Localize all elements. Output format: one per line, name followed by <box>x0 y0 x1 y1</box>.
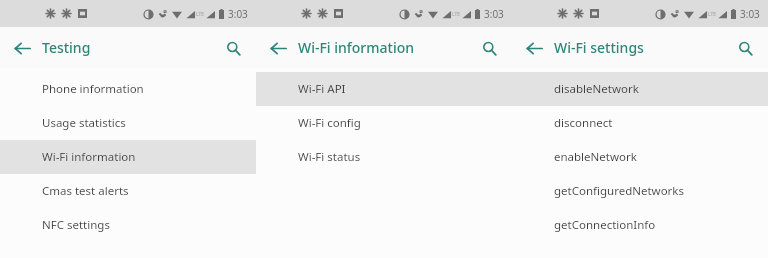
button[interactable]: Cmas test alerts <box>0 174 256 208</box>
button[interactable]: Search <box>218 33 248 63</box>
staticText: Wi-Fi API <box>298 81 346 97</box>
button[interactable]: enableNetwork <box>512 140 768 174</box>
staticText: enableNetwork <box>554 149 637 165</box>
button[interactable]: Search <box>474 33 504 63</box>
staticText: Usage statistics <box>42 115 126 131</box>
staticText: LTE <box>452 11 461 18</box>
staticText: getConnectionInfo <box>554 217 656 233</box>
staticText: Phone information <box>42 81 144 97</box>
staticText: disableNetwork <box>554 81 639 97</box>
staticText: Wi-Fi status <box>298 149 361 165</box>
staticText: 3:03 <box>228 7 248 21</box>
button[interactable]: NFC settings <box>0 208 256 242</box>
button[interactable]: Back <box>518 32 550 64</box>
staticText: LTE <box>196 11 205 18</box>
button[interactable]: Phone information <box>0 72 256 106</box>
button[interactable]: Usage statistics <box>0 106 256 140</box>
staticText: Cmas test alerts <box>42 183 129 199</box>
button[interactable]: Wi-Fi status <box>256 140 512 174</box>
staticText: Wi-Fi information <box>42 149 136 165</box>
button[interactable]: disconnect <box>512 106 768 140</box>
button[interactable]: getConfiguredNetworks <box>512 174 768 208</box>
staticText: 3:03 <box>484 7 504 21</box>
button[interactable]: Wi-Fi config <box>256 106 512 140</box>
staticText: 3:03 <box>740 7 760 21</box>
button[interactable]: Wi-Fi API <box>256 72 512 106</box>
button[interactable]: Back <box>6 32 38 64</box>
staticText: NFC settings <box>42 217 110 233</box>
button[interactable]: Back <box>262 32 294 64</box>
button[interactable]: Wi-Fi information <box>0 140 256 174</box>
staticText: Wi-Fi config <box>298 115 361 131</box>
staticText: getConfiguredNetworks <box>554 183 684 199</box>
staticText: LTE <box>708 11 717 18</box>
staticText: Wi-Fi settings <box>554 38 644 57</box>
button[interactable]: disableNetwork <box>512 72 768 106</box>
staticText: Testing <box>42 38 91 57</box>
button[interactable]: getConnectionInfo <box>512 208 768 242</box>
staticText: disconnect <box>554 115 613 131</box>
button[interactable]: Search <box>730 33 760 63</box>
staticText: Wi-Fi information <box>298 38 415 57</box>
